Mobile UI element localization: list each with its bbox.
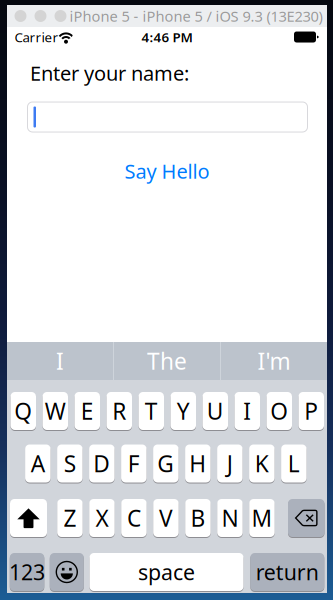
button[interactable]: Y [170, 392, 196, 430]
button[interactable]: V [153, 499, 179, 537]
staticText: X [95, 503, 108, 533]
button[interactable]: D [89, 444, 115, 482]
staticText: T [145, 396, 158, 426]
staticText: E [81, 396, 94, 426]
staticText: P [304, 396, 318, 426]
staticText: U [207, 396, 224, 426]
staticText: L [288, 448, 300, 478]
button[interactable]: L [281, 444, 307, 482]
button[interactable]: R [106, 392, 132, 430]
button[interactable]: E [74, 392, 100, 430]
staticText: V [159, 503, 173, 533]
button[interactable]: K [249, 444, 275, 482]
button[interactable]: S [57, 444, 83, 482]
button[interactable]: H [185, 444, 211, 482]
staticText: B [190, 503, 205, 533]
button[interactable]: I'm [221, 342, 327, 380]
staticText: K [255, 448, 269, 478]
staticText: W [45, 396, 66, 426]
button[interactable]: O [266, 392, 292, 430]
staticText: H [189, 448, 206, 478]
staticText: I [243, 396, 251, 426]
staticText: C [127, 503, 141, 533]
staticText: I [56, 346, 64, 376]
staticText: Carrier [14, 28, 58, 46]
button[interactable]: B [185, 499, 211, 537]
staticText: The [147, 346, 187, 376]
staticText: R [112, 396, 126, 426]
staticText: 123 [9, 558, 45, 586]
staticText: Z [63, 503, 76, 533]
staticText: O [270, 396, 288, 426]
button[interactable]: M [249, 499, 275, 537]
button[interactable]: Q [10, 392, 36, 430]
staticText: F [128, 448, 140, 478]
button[interactable]: The [114, 342, 220, 380]
button[interactable]: G [153, 444, 179, 482]
button[interactable]: P [298, 392, 324, 430]
staticText: space [138, 558, 195, 586]
staticText: I'm [257, 346, 290, 376]
staticText: iPhone 5 - iPhone 5 / iOS 9.3 (13E230) [69, 6, 322, 26]
button[interactable]: U [202, 392, 228, 430]
staticText: A [31, 448, 45, 478]
staticText: J [227, 448, 233, 478]
button[interactable]: W [42, 392, 68, 430]
button[interactable]: N [217, 499, 243, 537]
button[interactable]: I [7, 342, 113, 380]
button[interactable]: 123 [10, 553, 44, 591]
button[interactable]: I [234, 392, 260, 430]
button[interactable]: Delete [288, 499, 324, 537]
button[interactable]: J [217, 444, 243, 482]
staticText: N [221, 503, 238, 533]
staticText: Q [14, 396, 32, 426]
staticText: D [93, 448, 110, 478]
button[interactable]: T [138, 392, 164, 430]
button[interactable]: C [121, 499, 147, 537]
staticText: G [157, 448, 174, 478]
staticText: return [256, 558, 319, 586]
staticText: 4:46 PM [141, 28, 192, 46]
button[interactable]: return [250, 553, 324, 591]
button[interactable]: A [25, 444, 51, 482]
staticText: Say Hello [124, 158, 209, 184]
button[interactable]: Emoji [50, 553, 84, 591]
button[interactable]: F [121, 444, 147, 482]
button[interactable]: X [89, 499, 115, 537]
button[interactable]: Z [57, 499, 83, 537]
staticText: M [251, 503, 272, 533]
staticText: Enter your name: [30, 60, 189, 86]
button[interactable]: space [89, 553, 243, 591]
button[interactable]: Say Hello [7, 159, 327, 183]
button[interactable]: Shift [10, 499, 47, 537]
staticText: S [64, 448, 76, 478]
staticText: Y [177, 396, 190, 426]
